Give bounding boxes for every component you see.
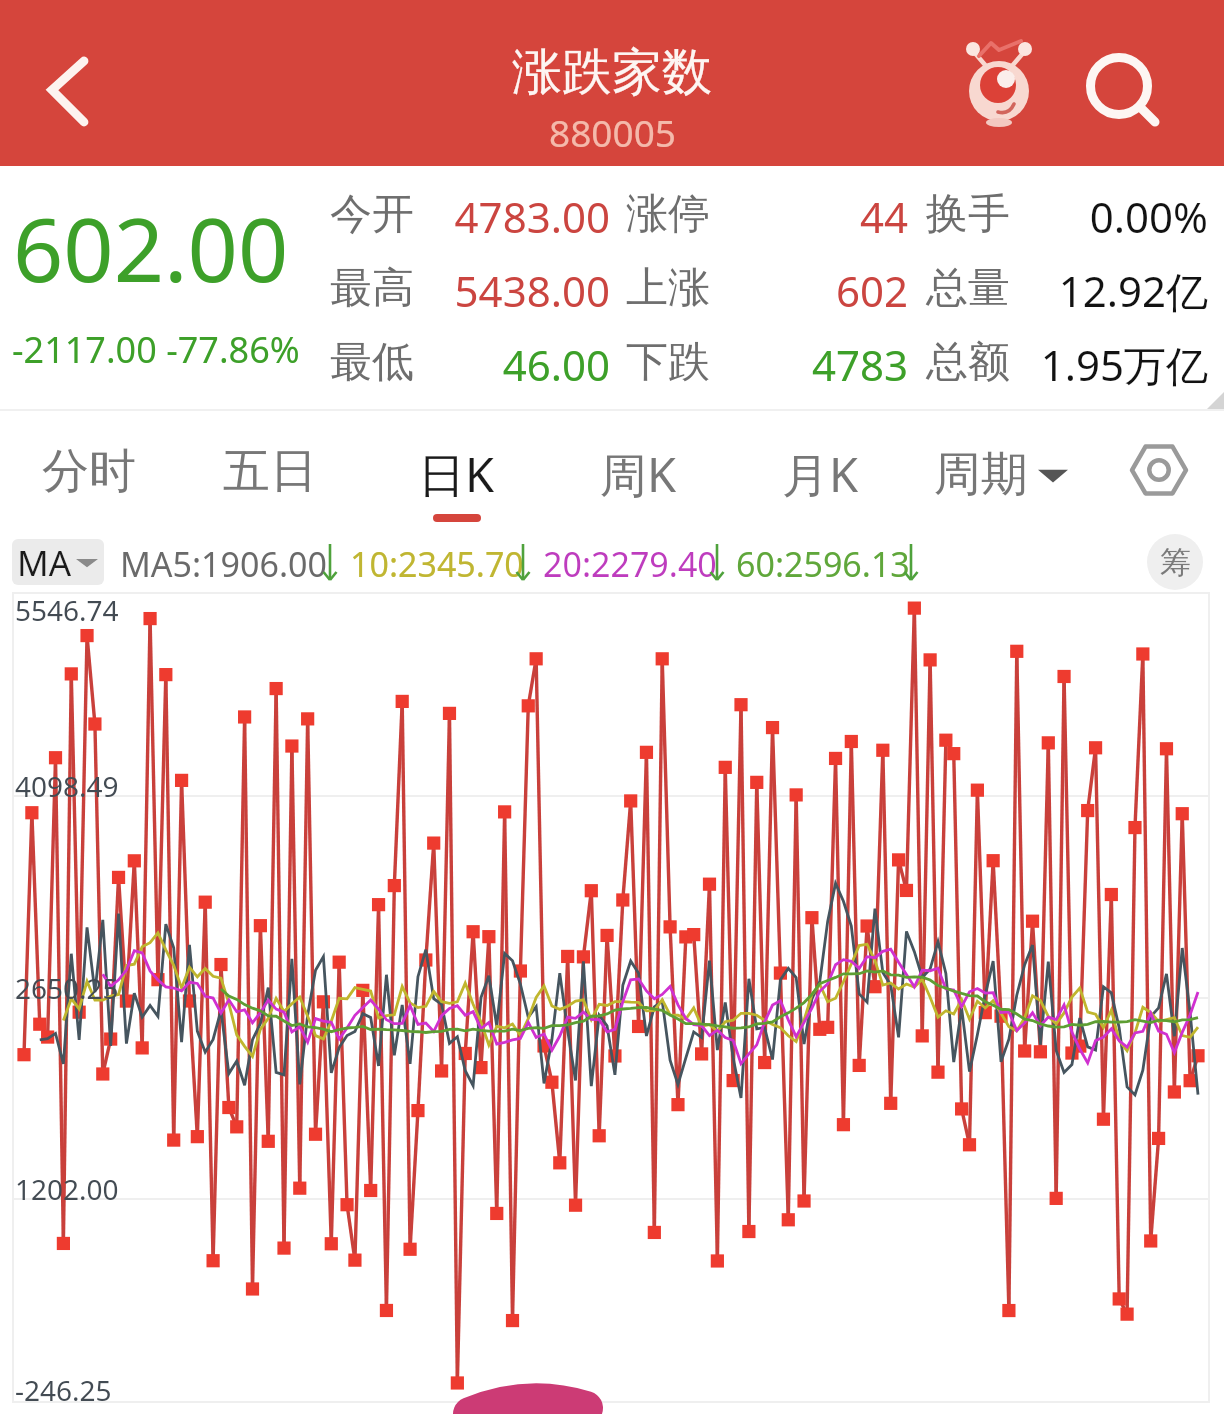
staticText: 1.95万亿 — [1010, 336, 1208, 393]
staticText: 46.00 — [420, 336, 610, 393]
staticText: 今开 — [330, 188, 414, 241]
staticText: 总量 — [926, 262, 1010, 315]
button[interactable]: 分时 — [19, 442, 159, 522]
staticText: 涨停 — [626, 188, 710, 241]
staticText: 44 — [780, 188, 908, 245]
button[interactable]: 周K — [568, 442, 708, 522]
button[interactable]: 周期 — [934, 443, 1068, 505]
button[interactable]: Back — [24, 42, 108, 137]
button[interactable]: MA — [12, 539, 104, 585]
staticText: 60:2596.13 — [736, 541, 910, 587]
staticText: MA — [17, 539, 72, 585]
staticText: -2117.00 -77.86% — [12, 325, 300, 374]
staticText: 602.00 — [13, 188, 289, 308]
staticText: 4098.49 — [15, 767, 119, 805]
button[interactable]: K line chart — [13, 593, 1209, 1402]
staticText: 分时 — [42, 442, 136, 501]
staticText: 换手 — [926, 188, 1010, 241]
staticText: 5546.74 — [15, 591, 119, 629]
staticText: 筹 — [1160, 543, 1191, 582]
staticText: 1202.00 — [15, 1170, 119, 1208]
button[interactable]: Search — [1080, 47, 1160, 129]
button[interactable]: 五日 — [200, 442, 340, 522]
button[interactable]: Chart settings — [1126, 437, 1192, 503]
staticText: 2650.25 — [15, 969, 119, 1007]
staticText: 602 — [780, 262, 908, 319]
staticText: 最高 — [330, 262, 414, 315]
staticText: 20:2279.40 — [543, 541, 717, 587]
staticText: 日K — [418, 442, 495, 506]
staticText: 周期 — [934, 445, 1028, 504]
staticText: 周K — [600, 442, 677, 506]
staticText: 4783.00 — [420, 188, 610, 245]
staticText: 涨跌家数 — [512, 41, 712, 104]
staticText: 下跌 — [626, 336, 710, 389]
button[interactable]: Quote summary — [0, 167, 1224, 409]
staticText: 月K — [782, 442, 859, 506]
staticText: 10:2345.70 — [350, 541, 524, 587]
staticText: 0.00% — [1010, 188, 1208, 245]
staticText: 4783 — [780, 336, 908, 393]
button[interactable]: 筹 — [1147, 534, 1203, 590]
staticText: 880005 — [549, 107, 676, 157]
staticText: 总额 — [926, 336, 1010, 389]
staticText: 5438.00 — [420, 262, 610, 319]
staticText: 12.92亿 — [1010, 262, 1208, 319]
button[interactable]: AI assistant — [963, 40, 1035, 135]
button[interactable]: 月K — [750, 442, 890, 522]
staticText: -246.25 — [15, 1371, 112, 1409]
staticText: 最低 — [330, 336, 414, 389]
staticText: 五日 — [223, 442, 317, 501]
staticText: MA5:1906.00 — [120, 541, 327, 587]
button[interactable]: 日K — [386, 442, 526, 522]
staticText: 上涨 — [626, 262, 710, 315]
